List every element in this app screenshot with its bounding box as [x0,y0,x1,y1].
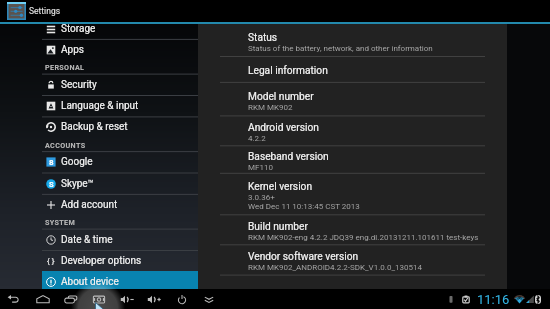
staticText: Settings [29,6,61,16]
staticText: Google [61,156,93,168]
staticText: Add account [61,199,118,211]
staticText: 8 [49,158,54,167]
staticText: PERSONAL [45,63,85,71]
button[interactable]: Screenshot [87,289,111,309]
button[interactable]: Home [31,289,55,309]
staticText: About device [61,276,119,288]
button[interactable]: { } [42,250,198,271]
staticText: Apps [61,44,84,56]
button[interactable]: Recent apps [59,289,83,309]
button[interactable]: Kernel version [198,173,507,215]
button[interactable]: Backup & reset [42,116,198,137]
staticText: Security [61,79,97,91]
staticText: ACCOUNTS [45,141,86,149]
button[interactable]: Expand notifications [197,289,221,309]
staticText: Build number [248,221,308,233]
staticText: Date & time [61,234,113,246]
staticText: S [49,180,54,189]
other: Settings [7,2,26,20]
staticText: RKM MK902_ANDROID4.2.2-SDK_V1.0.0_130514 [248,263,422,272]
button[interactable]: Android version [198,115,507,145]
staticText: Legal information [248,65,328,77]
button[interactable]: Add account [42,194,198,215]
button[interactable]: Legal information [198,56,507,82]
button[interactable]: Apps [42,39,198,60]
button[interactable]: Baseband version [198,145,507,173]
staticText: 3.0.36+ [248,193,275,202]
button[interactable]: Settings [0,0,67,22]
staticText: Android version [248,122,319,134]
button[interactable]: Vendor software version [198,244,507,274]
button[interactable]: Status [198,24,507,56]
staticText: Baseband version [248,151,329,163]
button[interactable]: Volume down [115,289,139,309]
staticText: Developer options [61,255,142,267]
staticText: Status [248,32,278,44]
staticText: RKM MK902 [248,103,293,112]
staticText: Wed Dec 11 10:13:45 CST 2013 [248,202,360,211]
staticText: Skype™ [61,178,94,190]
staticText: Kernel version [248,181,313,193]
button[interactable]: Security [42,74,198,95]
staticText: SYSTEM [45,218,76,226]
button[interactable]: Back [2,289,26,309]
staticText: Storage [61,24,96,35]
staticText: 11:16 [477,292,510,307]
staticText: Language & input [61,100,139,112]
button[interactable]: Build number [198,214,507,244]
button[interactable]: Volume up [142,289,166,309]
staticText: 4.2.2 [248,134,266,143]
button[interactable]: About device [42,271,198,290]
button[interactable]: 8 [42,151,198,172]
staticText: Model number [248,91,314,103]
staticText: MF110 [248,163,273,172]
button[interactable]: Storage [42,24,198,39]
staticText: { } [47,257,55,266]
staticText: RKM MK902-eng 4.2.2 JDQ39 eng.dl.2013121… [248,233,479,242]
button[interactable]: Power [170,289,194,309]
button[interactable]: S [42,173,198,194]
button[interactable]: Date & time [42,229,198,250]
staticText: Status of the battery, network, and othe… [248,44,433,53]
staticText: Vendor software version [248,251,359,263]
button[interactable]: Language & input [42,95,198,116]
button[interactable]: Model number [198,82,507,116]
staticText: Backup & reset [61,121,128,133]
